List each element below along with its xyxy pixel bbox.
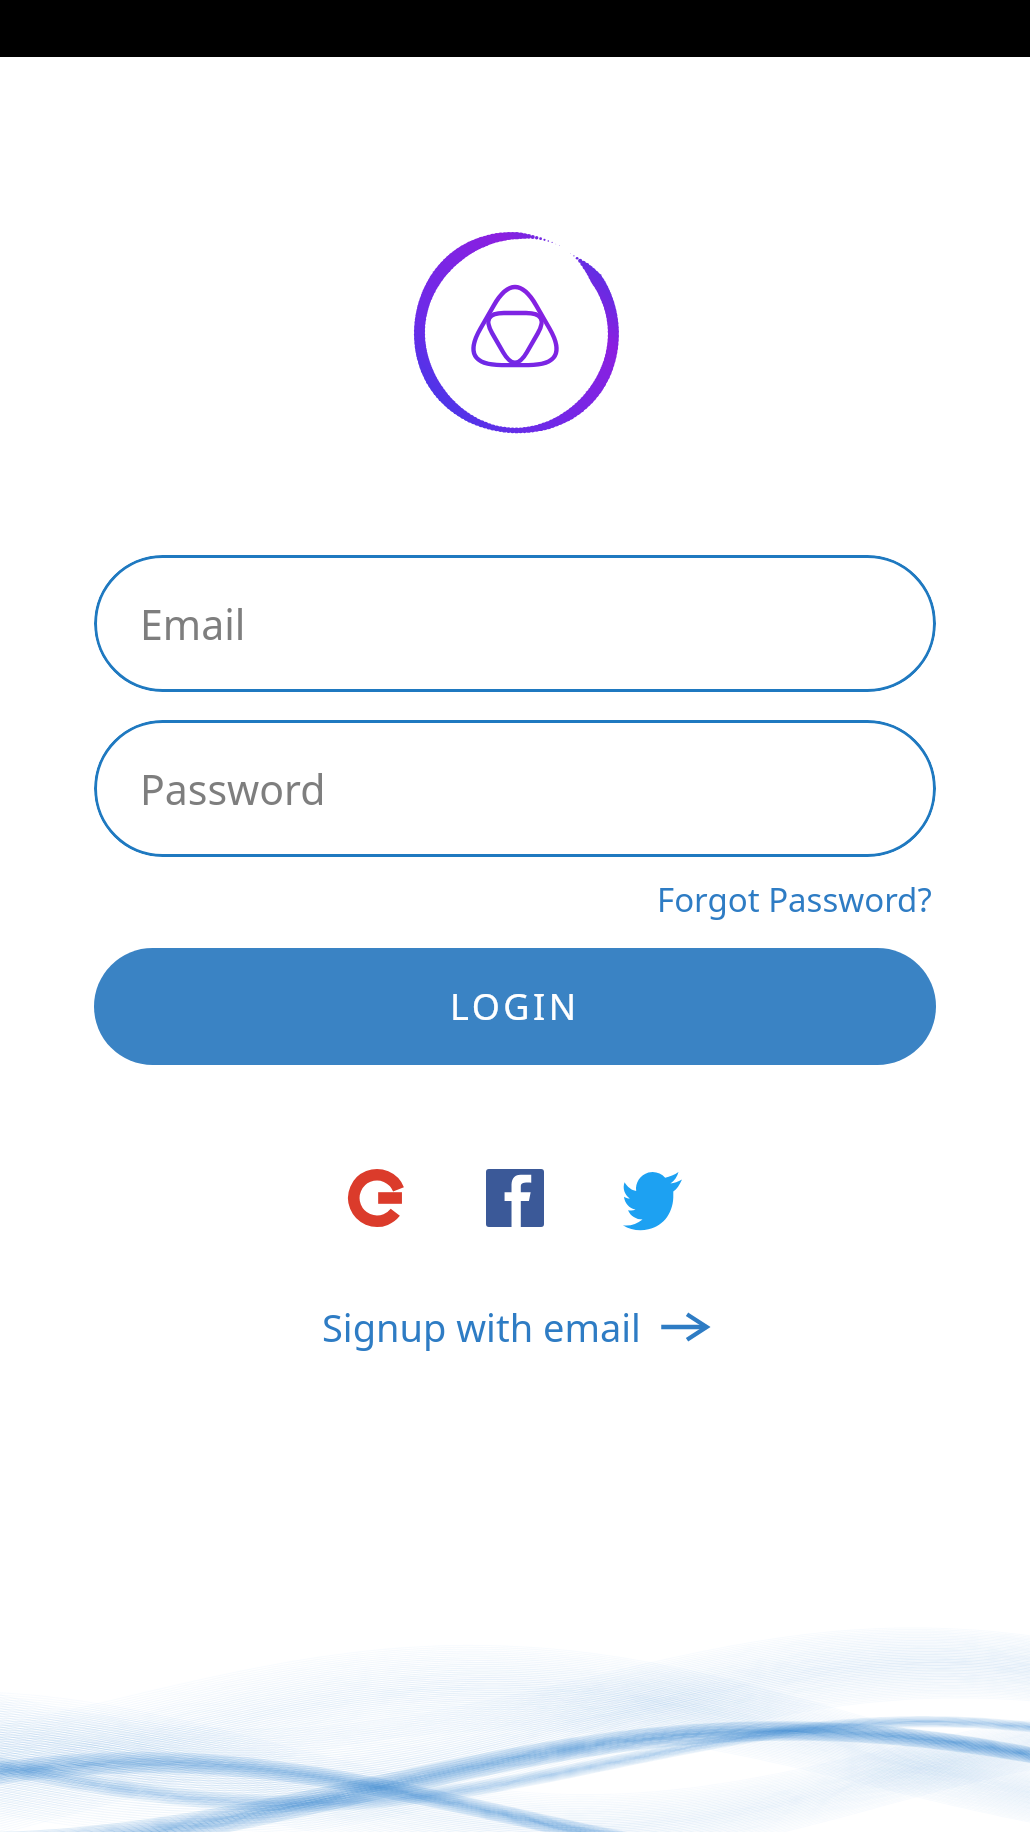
staticText: Password <box>140 761 326 817</box>
staticText: LOGIN <box>450 982 580 1031</box>
button[interactable]: LOGIN <box>94 948 936 1065</box>
button[interactable]: Sign in with Facebook <box>468 1151 562 1245</box>
button[interactable]: Forgot Password? <box>653 869 936 930</box>
button[interactable]: Signup with email <box>308 1291 723 1363</box>
staticText: Signup with email <box>322 1301 641 1353</box>
button[interactable]: Sign in with Google <box>330 1151 424 1245</box>
button[interactable]: Email <box>94 555 936 692</box>
staticText: Email <box>140 596 246 652</box>
button[interactable]: Sign in with Twitter <box>606 1151 700 1245</box>
staticText: Forgot Password? <box>657 877 932 922</box>
button[interactable]: Password <box>94 720 936 857</box>
